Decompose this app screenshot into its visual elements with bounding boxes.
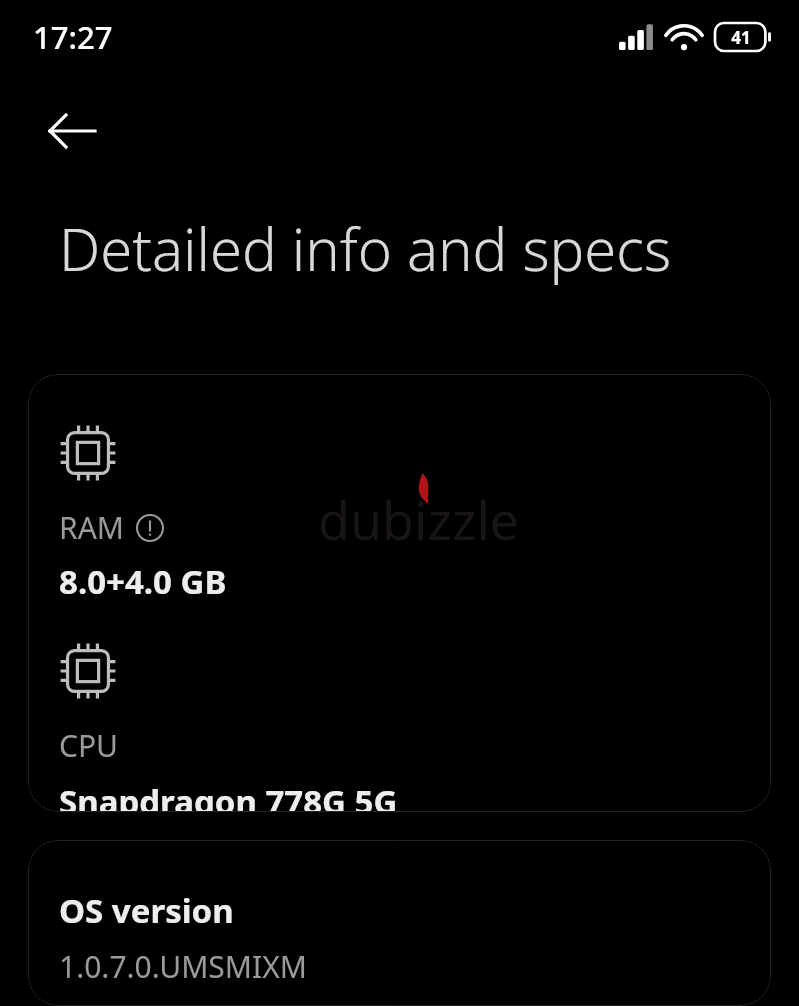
button[interactable]: OS version xyxy=(28,840,771,1006)
staticText: Detailed info and specs xyxy=(59,209,672,288)
staticText: Snapdragon 778G 5G xyxy=(59,779,398,812)
staticText: 1.0.7.0.UMSMIXM xyxy=(59,946,307,987)
staticText: RAM xyxy=(59,507,125,548)
button[interactable]: dubizzle xyxy=(28,374,771,812)
button[interactable]: Back xyxy=(38,97,106,165)
staticText: 41 xyxy=(731,26,751,49)
staticText: OS version xyxy=(59,888,234,933)
staticText: 8.0+4.0 GB xyxy=(59,559,227,604)
staticText: CPU xyxy=(59,725,119,766)
staticText: dubizzle xyxy=(318,484,520,555)
staticText: 17:27 xyxy=(33,16,113,58)
